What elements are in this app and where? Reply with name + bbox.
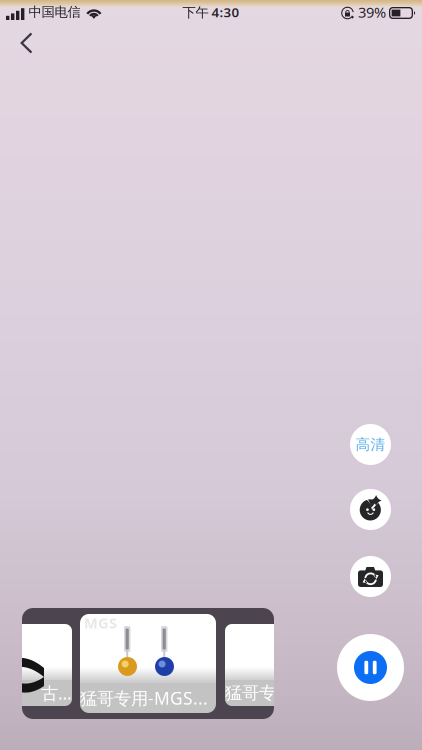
button[interactable]: 猛哥专	[225, 624, 291, 706]
staticText: 39%	[358, 2, 386, 22]
staticText: 古…	[41, 681, 72, 704]
staticText: 猛哥专	[225, 682, 276, 704]
button[interactable]: Pause	[337, 634, 404, 701]
staticText: MGS	[84, 613, 117, 632]
button[interactable]: Flip camera	[350, 556, 391, 597]
button[interactable]: 古…	[6, 624, 72, 706]
staticText: 中国电信	[28, 4, 80, 20]
staticText: 下午 4:30	[182, 3, 239, 21]
button[interactable]: MGS	[80, 614, 216, 713]
button[interactable]: 高清	[350, 424, 391, 465]
button[interactable]: Beauty filter	[350, 489, 391, 530]
staticText: 高清	[355, 435, 385, 453]
staticText: 猛哥专用-MGS...	[80, 686, 208, 709]
button[interactable]: Back	[6, 23, 46, 63]
